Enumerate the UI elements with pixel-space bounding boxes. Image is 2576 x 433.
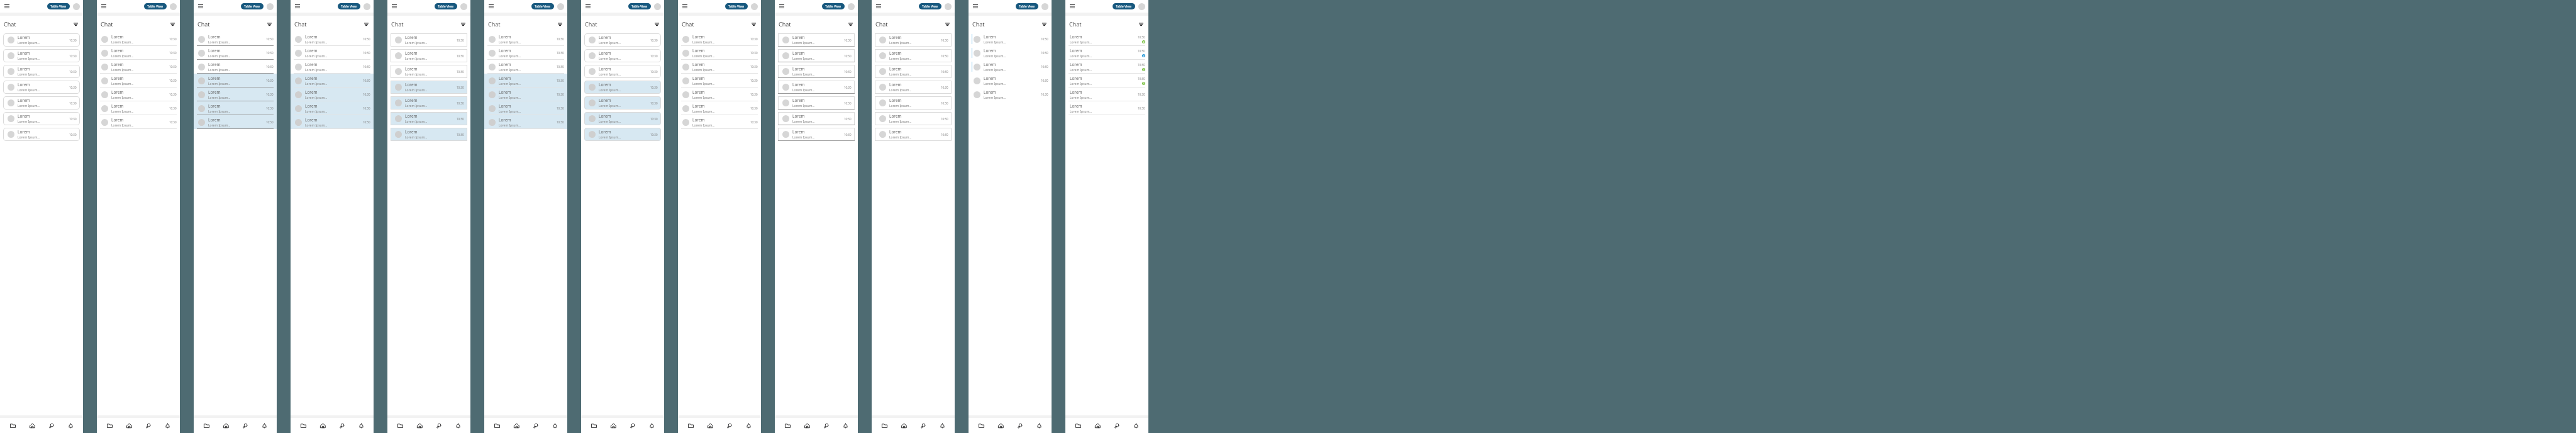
button[interactable]: Lorem	[581, 48, 664, 64]
button[interactable]: Lorem	[969, 60, 1052, 74]
button[interactable]: Lorem	[291, 74, 374, 87]
button[interactable]: Lorem	[484, 74, 567, 87]
button[interactable]: Alerts	[1033, 419, 1045, 432]
button[interactable]: Chat	[432, 419, 445, 432]
button[interactable]: Chat	[916, 419, 929, 432]
button[interactable]: Lorem	[581, 111, 664, 127]
button[interactable]: Menu	[972, 3, 979, 10]
button[interactable]: Files	[394, 419, 406, 432]
button[interactable]: Alerts	[355, 419, 367, 432]
button[interactable]: Menu	[584, 3, 592, 10]
button[interactable]: Filter	[944, 21, 951, 28]
button[interactable]: Filter	[653, 21, 660, 28]
button[interactable]: Files	[1072, 419, 1084, 432]
button[interactable]: Lorem	[1065, 87, 1148, 101]
button[interactable]: Chat	[723, 419, 735, 432]
button[interactable]: Lorem	[0, 64, 83, 79]
button[interactable]: Table View	[338, 3, 360, 9]
button[interactable]: Menu	[100, 3, 108, 10]
button[interactable]: Files	[587, 419, 600, 432]
button[interactable]: Home	[123, 419, 135, 432]
button[interactable]: Home	[994, 419, 1007, 432]
button[interactable]: Lorem	[775, 111, 858, 127]
button[interactable]: Chat	[45, 419, 57, 432]
button[interactable]: Profile	[557, 3, 564, 10]
button[interactable]: Lorem	[387, 64, 470, 79]
button[interactable]: Files	[684, 419, 697, 432]
button[interactable]: Table View	[919, 3, 941, 9]
button[interactable]: Lorem	[291, 101, 374, 115]
button[interactable]: Lorem	[387, 95, 470, 111]
button[interactable]: Lorem	[291, 87, 374, 101]
button[interactable]: Lorem	[0, 79, 83, 95]
button[interactable]: Lorem	[1065, 46, 1148, 60]
button[interactable]: Lorem	[97, 87, 180, 101]
button[interactable]: Alerts	[452, 419, 464, 432]
button[interactable]: Lorem	[484, 46, 567, 60]
button[interactable]: Lorem	[97, 101, 180, 115]
button[interactable]: Lorem	[484, 101, 567, 115]
button[interactable]: Files	[297, 419, 309, 432]
button[interactable]: Lorem	[1065, 101, 1148, 115]
button[interactable]: Lorem	[291, 46, 374, 60]
button[interactable]: Table View	[1113, 3, 1135, 9]
button[interactable]: Lorem	[872, 111, 955, 127]
button[interactable]: Alerts	[64, 419, 77, 432]
button[interactable]: Filter	[1041, 21, 1048, 28]
button[interactable]: Lorem	[97, 74, 180, 87]
button[interactable]: Lorem	[775, 95, 858, 111]
button[interactable]: Lorem	[678, 46, 761, 60]
button[interactable]: Filter	[847, 21, 854, 28]
button[interactable]: Lorem	[484, 60, 567, 74]
button[interactable]: Lorem	[194, 87, 277, 101]
button[interactable]: Files	[975, 419, 987, 432]
button[interactable]: Lorem	[387, 32, 470, 48]
button[interactable]: Lorem	[581, 79, 664, 95]
button[interactable]: Filter	[557, 21, 563, 28]
button[interactable]: Chat	[626, 419, 638, 432]
button[interactable]: Lorem	[291, 32, 374, 46]
button[interactable]: Table View	[241, 3, 264, 9]
button[interactable]: Lorem	[581, 32, 664, 48]
button[interactable]: Lorem	[194, 74, 277, 87]
button[interactable]: Lorem	[387, 127, 470, 142]
button[interactable]: Alerts	[645, 419, 658, 432]
button[interactable]: Lorem	[678, 101, 761, 115]
button[interactable]: Lorem	[484, 87, 567, 101]
button[interactable]: Lorem	[97, 46, 180, 60]
button[interactable]: Home	[897, 419, 910, 432]
button[interactable]: Files	[491, 419, 503, 432]
button[interactable]: Lorem	[969, 32, 1052, 46]
button[interactable]: Lorem	[775, 127, 858, 142]
button[interactable]: Home	[510, 419, 523, 432]
button[interactable]: Lorem	[484, 32, 567, 46]
button[interactable]: Lorem	[1065, 74, 1148, 87]
button[interactable]: Alerts	[839, 419, 852, 432]
button[interactable]: Table View	[47, 3, 70, 9]
button[interactable]: Lorem	[97, 32, 180, 46]
button[interactable]: Filter	[72, 21, 79, 28]
button[interactable]: Lorem	[194, 115, 277, 129]
button[interactable]: Lorem	[775, 79, 858, 95]
button[interactable]: Menu	[875, 3, 882, 10]
button[interactable]: Lorem	[872, 32, 955, 48]
button[interactable]: Profile	[848, 3, 855, 10]
button[interactable]: Table View	[725, 3, 748, 9]
button[interactable]: Profile	[460, 3, 467, 10]
button[interactable]: Menu	[391, 3, 398, 10]
button[interactable]: Filter	[266, 21, 273, 28]
button[interactable]: Lorem	[0, 32, 83, 48]
button[interactable]: Lorem	[678, 60, 761, 74]
button[interactable]: Chat	[142, 419, 154, 432]
button[interactable]: Menu	[778, 3, 786, 10]
button[interactable]: Lorem	[194, 101, 277, 115]
button[interactable]: Lorem	[581, 64, 664, 79]
button[interactable]: Alerts	[742, 419, 755, 432]
button[interactable]: Alerts	[936, 419, 948, 432]
button[interactable]: Alerts	[161, 419, 174, 432]
button[interactable]: Profile	[170, 3, 177, 10]
button[interactable]: Lorem	[872, 48, 955, 64]
button[interactable]: Files	[781, 419, 794, 432]
button[interactable]: Table View	[531, 3, 554, 9]
button[interactable]: Lorem	[775, 64, 858, 79]
